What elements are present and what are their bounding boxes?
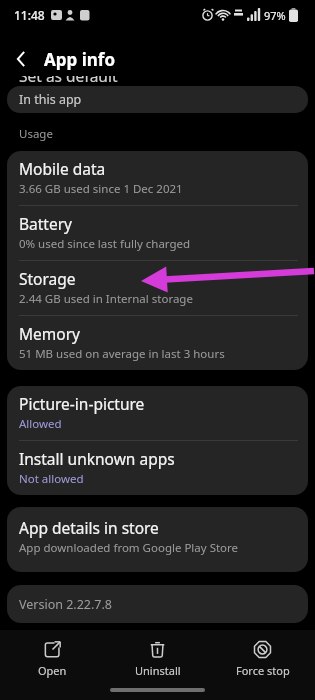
button[interactable]: Uninstall [105, 630, 210, 688]
staticText: Mobile data [19, 158, 106, 179]
button[interactable]: Memory [7, 316, 308, 370]
staticText: Battery [19, 213, 73, 234]
button[interactable]: App details in store [7, 507, 308, 572]
staticText: Storage [19, 268, 76, 289]
staticText: 11:48 [14, 7, 45, 23]
staticText: Force stop [236, 663, 290, 678]
staticText: Allowed [19, 416, 62, 432]
button[interactable]: Mobile data [7, 151, 308, 205]
staticText: Not allowed [19, 471, 84, 487]
staticText: 0% used since last fully charged [19, 236, 191, 252]
staticText: 51 MB used on average in last 3 hours [19, 346, 225, 362]
staticText: 97% [264, 8, 286, 23]
staticText: In this app [19, 91, 82, 108]
button[interactable] [0, 42, 44, 76]
staticText: 3.66 GB used since 1 Dec 2021 [19, 181, 183, 197]
button[interactable]: Open [0, 630, 105, 688]
button[interactable]: Force stop [210, 630, 315, 688]
staticText: Install unknown apps [19, 448, 175, 469]
button[interactable]: In this app [7, 86, 308, 113]
staticText: Uninstall [135, 663, 181, 678]
staticText: Usage [19, 126, 53, 142]
staticText: 2.44 GB used in Internal storage [19, 291, 193, 307]
staticText: Open [38, 663, 67, 678]
staticText: Version 2.22.7.8 [19, 596, 113, 613]
staticText: App details in store [19, 517, 159, 538]
staticText: App downloaded from Google Play Store [19, 540, 239, 556]
button[interactable]: Picture-in-picture [7, 386, 308, 440]
staticText: Picture-in-picture [19, 393, 145, 414]
staticText: Memory [19, 323, 80, 344]
staticText: App info [44, 48, 116, 71]
button[interactable]: Install unknown apps [7, 441, 308, 495]
button[interactable]: Storage [7, 261, 308, 315]
button[interactable]: Battery [7, 206, 308, 260]
